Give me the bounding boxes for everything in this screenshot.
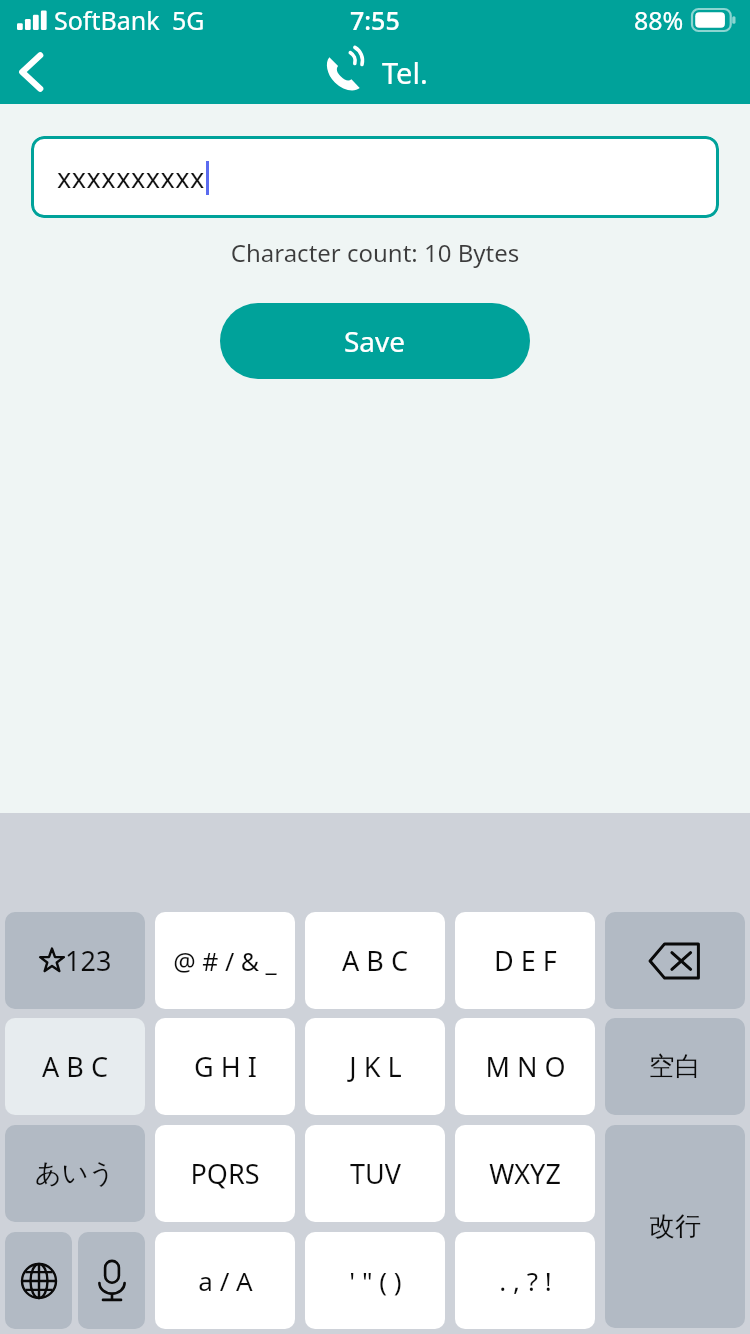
- staticText: @ # / & _: [173, 944, 277, 978]
- staticText: xxxxxxxxxx: [57, 159, 205, 196]
- staticText: J K L: [349, 1048, 402, 1085]
- button[interactable]: WXYZ: [455, 1125, 595, 1222]
- button[interactable]: Save: [220, 303, 530, 379]
- staticText: 88%: [634, 3, 684, 37]
- button[interactable]: 改行: [605, 1125, 745, 1328]
- button[interactable]: 123: [5, 912, 145, 1009]
- button[interactable]: 空白: [605, 1018, 745, 1115]
- button[interactable]: Switch keyboard: [5, 1232, 72, 1329]
- button[interactable]: PQRS: [155, 1125, 295, 1222]
- button[interactable]: . , ? !: [455, 1232, 595, 1329]
- staticText: TUV: [350, 1155, 401, 1192]
- button[interactable]: J K L: [305, 1018, 445, 1115]
- button[interactable]: D E F: [455, 912, 595, 1009]
- button[interactable]: Back: [0, 41, 62, 103]
- staticText: M N O: [485, 1048, 566, 1085]
- button[interactable]: ' " ( ): [305, 1232, 445, 1329]
- staticText: WXYZ: [489, 1155, 561, 1192]
- button[interactable]: @ # / & _: [155, 912, 295, 1009]
- button[interactable]: xxxxxxxxxx: [31, 136, 719, 218]
- button[interactable]: TUV: [305, 1125, 445, 1222]
- staticText: Tel.: [382, 53, 428, 92]
- staticText: SoftBank: [54, 3, 160, 37]
- staticText: 123: [65, 942, 112, 979]
- button[interactable]: G H I: [155, 1018, 295, 1115]
- staticText: D E F: [494, 942, 557, 979]
- staticText: 5G: [172, 3, 205, 37]
- button[interactable]: あいう: [5, 1125, 145, 1222]
- button[interactable]: M N O: [455, 1018, 595, 1115]
- staticText: 空白: [649, 1050, 701, 1083]
- staticText: Character count: 10 Bytes: [0, 236, 750, 269]
- staticText: あいう: [35, 1157, 115, 1190]
- staticText: . , ? !: [499, 1263, 552, 1298]
- staticText: G H I: [194, 1048, 257, 1085]
- staticText: ' " ( ): [349, 1263, 402, 1298]
- staticText: Save: [344, 322, 406, 360]
- button[interactable]: Voice input: [78, 1232, 145, 1329]
- button[interactable]: A B C: [305, 912, 445, 1009]
- button[interactable]: a / A: [155, 1232, 295, 1329]
- staticText: 7:55: [350, 3, 400, 37]
- button[interactable]: Backspace: [605, 912, 745, 1009]
- staticText: A B C: [342, 942, 408, 979]
- button[interactable]: A B C: [5, 1018, 145, 1115]
- staticText: a / A: [198, 1263, 253, 1298]
- staticText: PQRS: [190, 1155, 260, 1192]
- staticText: A B C: [42, 1048, 108, 1085]
- staticText: 改行: [649, 1210, 701, 1243]
